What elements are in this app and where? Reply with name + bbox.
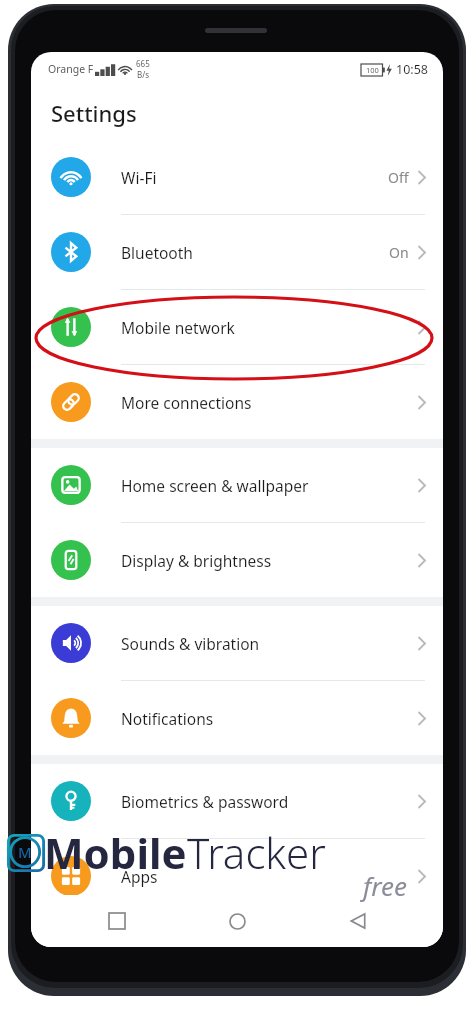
staticText: Notifications [121,708,214,729]
staticText: Display & brightness [121,550,272,571]
button[interactable]: Home screen & wallpaper [31,448,443,522]
staticText: Home screen & wallpaper [121,475,309,496]
staticText: Tracker [187,824,326,881]
staticText: More connections [121,392,252,413]
staticText: Settings [51,98,137,128]
staticText: Bluetooth [121,242,193,263]
button[interactable]: Back [323,898,393,944]
button[interactable]: Recent apps [82,898,152,944]
staticText: Orange F [48,62,94,76]
staticText: Wi-Fi [121,167,157,188]
staticText: Off [388,168,409,187]
button[interactable]: Bluetooth [31,215,443,289]
staticText: Mobile network [121,317,235,338]
staticText: Sounds & vibration [121,633,260,654]
button[interactable]: Notifications [31,681,443,755]
staticText: free [363,868,408,903]
staticText: Biometrics & password [121,791,289,812]
button[interactable]: Biometrics & password [31,764,443,838]
staticText: On [389,243,409,262]
staticText: Apps [121,866,158,887]
staticText: 100 [366,65,379,75]
button[interactable]: Display & brightness [31,523,443,597]
staticText: M [18,842,32,862]
button[interactable]: Wi-Fi [31,140,443,214]
staticText: 10:58 [396,61,428,78]
button[interactable]: Mobile network [31,290,443,364]
button[interactable]: More connections [31,365,443,439]
button[interactable]: Sounds & vibration [31,606,443,680]
button[interactable]: Apps [31,839,443,913]
staticText: Mobile [44,824,187,881]
button[interactable]: Home [202,898,272,944]
staticText: B/s [137,69,150,80]
staticText: 665 [136,58,150,69]
